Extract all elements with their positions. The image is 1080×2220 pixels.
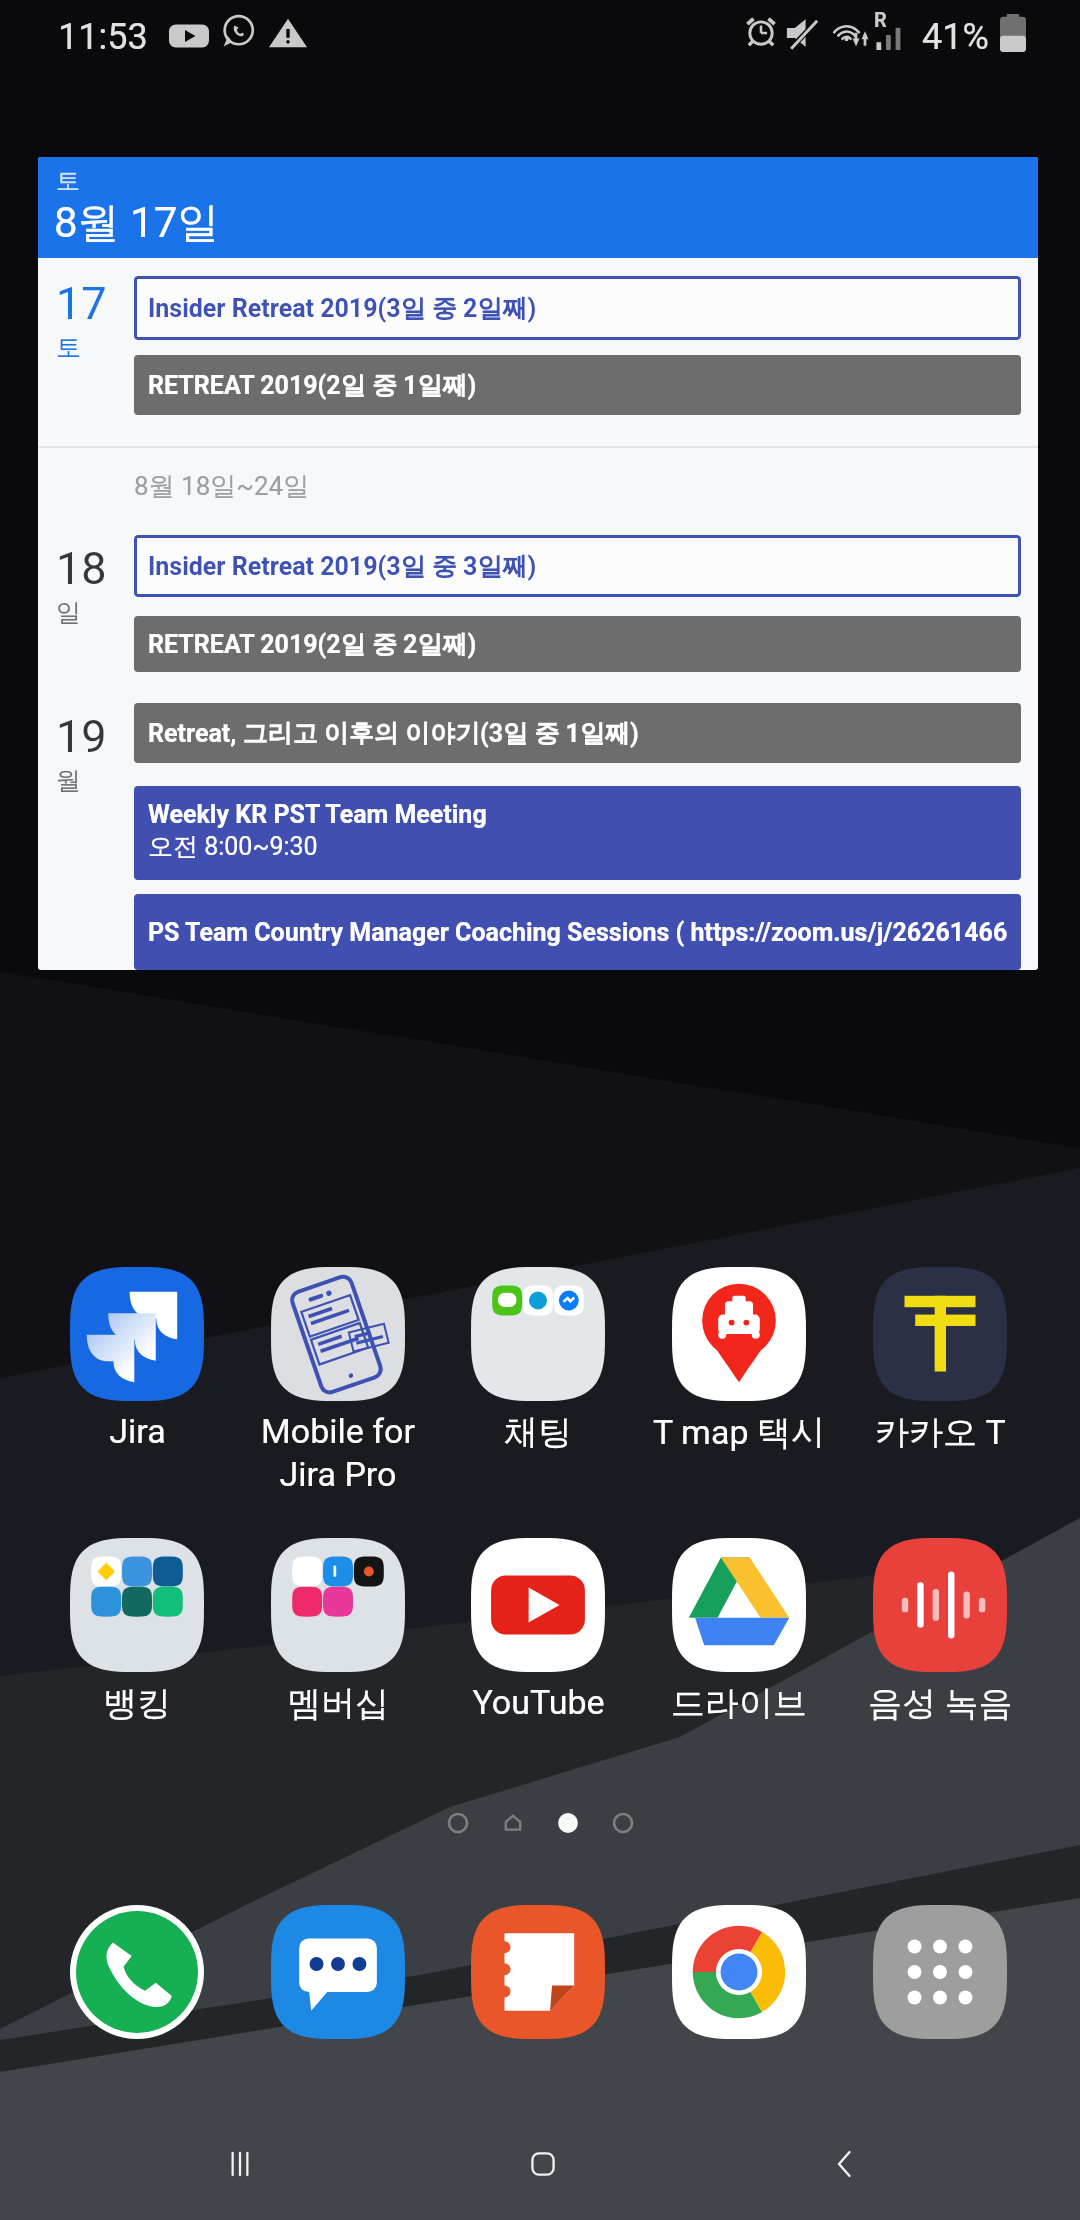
button[interactable]: T map 택시 (639, 1267, 839, 1454)
button[interactable]: Recents (180, 2108, 300, 2220)
button[interactable]: Home page (498, 1808, 528, 1838)
button[interactable]: Retreat, 그리고 이후의 이야기(3일 중 1일째) (134, 703, 1021, 763)
button[interactable]: Back (785, 2108, 905, 2220)
staticText: T map 택시 (653, 1411, 825, 1454)
staticText: Mobile for Jira Pro (261, 1411, 415, 1494)
staticText: 월 (56, 765, 81, 796)
button[interactable]: YouTube (438, 1538, 638, 1722)
button[interactable]: RETREAT 2019(2일 중 1일째) (134, 355, 1021, 415)
staticText: 오전 8:00~9:30 (148, 831, 318, 862)
staticText: RETREAT 2019(2일 중 1일째) (148, 370, 477, 401)
button[interactable]: 멤버십 (238, 1538, 438, 1725)
button[interactable]: PS Team Country Manager Coaching Session… (134, 894, 1021, 970)
button[interactable]: 드라이브 (639, 1538, 839, 1725)
staticText: Insider Retreat 2019(3일 중 3일째) (148, 551, 537, 582)
staticText: Jira (109, 1411, 166, 1451)
staticText: Retreat, 그리고 이후의 이야기(3일 중 1일째) (148, 718, 639, 749)
staticText: 카카오 T (875, 1411, 1006, 1454)
button[interactable]: Page 4 (608, 1808, 638, 1838)
staticText: 8월 18일~24일 (134, 470, 310, 503)
staticText: 음성 녹음 (868, 1682, 1013, 1725)
button[interactable]: Page 3, current (553, 1808, 583, 1838)
button[interactable]: 채팅 (438, 1267, 638, 1454)
button[interactable]: Weekly KR PST Team Meeting (134, 786, 1021, 880)
button[interactable]: Phone (70, 1905, 204, 2039)
staticText: 토 (56, 166, 80, 196)
staticText: R (874, 8, 887, 31)
button[interactable]: RETREAT 2019(2일 중 2일째) (134, 616, 1021, 672)
button[interactable]: 음성 녹음 (840, 1538, 1040, 1725)
button[interactable]: Apps (873, 1905, 1007, 2039)
staticText: 8월 17일 (54, 197, 220, 250)
staticText: Insider Retreat 2019(3일 중 2일째) (148, 293, 537, 324)
button[interactable]: Insider Retreat 2019(3일 중 3일째) (134, 535, 1021, 597)
button[interactable]: 토 (38, 157, 1038, 970)
staticText: 채팅 (504, 1411, 572, 1454)
staticText: 11:53 (58, 16, 148, 58)
staticText: 멤버십 (287, 1682, 389, 1725)
staticText: RETREAT 2019(2일 중 2일째) (148, 629, 477, 660)
button[interactable]: 카카오 T (840, 1267, 1040, 1454)
staticText: 토 (56, 332, 81, 363)
button[interactable]: Chrome (672, 1905, 806, 2039)
button[interactable]: Page 1 (443, 1808, 473, 1838)
button[interactable]: Messages (271, 1905, 405, 2039)
staticText: 19 (56, 710, 107, 763)
staticText: 일 (56, 597, 81, 628)
staticText: 17 (56, 277, 107, 330)
staticText: 드라이브 (671, 1682, 807, 1725)
button[interactable]: Jira (37, 1267, 237, 1451)
button[interactable]: Insider Retreat 2019(3일 중 2일째) (134, 276, 1021, 340)
button[interactable]: Notes (471, 1905, 605, 2039)
button[interactable]: Mobile for Jira Pro (238, 1267, 438, 1494)
button[interactable]: Home (483, 2108, 603, 2220)
staticText: 18 (56, 542, 107, 595)
staticText: 뱅킹 (103, 1682, 171, 1725)
staticText: Weekly KR PST Team Meeting (148, 800, 487, 829)
staticText: PS Team Country Manager Coaching Session… (148, 918, 1008, 947)
staticText: YouTube (472, 1682, 605, 1722)
staticText: 41% (922, 16, 989, 58)
button[interactable]: 뱅킹 (37, 1538, 237, 1725)
